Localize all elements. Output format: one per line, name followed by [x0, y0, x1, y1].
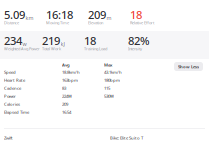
staticText: Training Load: [84, 46, 107, 51]
staticText: Cadence: [4, 85, 21, 91]
staticText: 5.09: [4, 7, 25, 22]
staticText: Distance: [4, 20, 19, 25]
staticText: 219: [42, 33, 60, 48]
staticText: Max: [104, 62, 112, 68]
staticText: kJ: [61, 40, 65, 48]
staticText: Elevation: [88, 20, 103, 25]
staticText: 209: [62, 101, 68, 107]
staticText: 115: [104, 85, 110, 91]
staticText: 224W: [62, 93, 72, 99]
staticText: 82%: [128, 33, 150, 48]
button[interactable]: Show Less: [174, 62, 203, 71]
staticText: Show Less: [178, 64, 199, 69]
staticText: Intensity: [128, 46, 142, 51]
staticText: 530W: [104, 93, 114, 99]
staticText: Moving Time: [46, 20, 69, 25]
staticText: Total Work: [42, 46, 61, 51]
staticText: w: [23, 40, 27, 48]
staticText: 18.8km/h: [62, 69, 80, 75]
staticText: km: [26, 14, 34, 22]
staticText: m: [107, 14, 112, 22]
staticText: 43.1km/h: [104, 69, 122, 75]
staticText: Elapsed Time: [4, 109, 29, 115]
staticText: Zwift: [4, 135, 13, 141]
staticText: 234: [4, 33, 22, 48]
staticText: Weighted Avg Power: [4, 46, 40, 51]
staticText: 18: [84, 33, 96, 48]
staticText: 16:18: [46, 7, 73, 22]
staticText: 18: [130, 7, 142, 22]
staticText: 180bpm: [104, 77, 120, 83]
staticText: Bike: Elite Suito T: [110, 135, 143, 141]
staticText: Avg: [62, 62, 70, 68]
staticText: 83: [62, 85, 66, 91]
staticText: Heart Rate: [4, 77, 25, 83]
staticText: 163bpm: [62, 77, 78, 83]
staticText: 209: [88, 7, 106, 22]
staticText: Power: [4, 93, 16, 99]
staticText: Calories: [4, 101, 20, 107]
staticText: Relative Effort: [130, 20, 154, 25]
staticText: 16:54: [62, 109, 71, 115]
staticText: Speed: [4, 69, 16, 75]
